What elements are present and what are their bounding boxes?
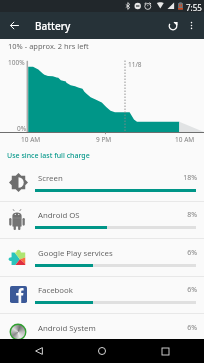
staticText: 8% [172,210,197,220]
staticText: Google Play services [38,248,113,259]
staticText: Screen [38,173,63,184]
staticText: Facebook [38,285,73,296]
button[interactable]: Refresh [164,12,181,39]
button[interactable]: Recents [141,339,189,363]
staticText: 18% [172,173,197,183]
staticText: 7:55 [186,2,202,13]
button[interactable]: Android OS [0,201,204,239]
staticText: 0% [17,124,27,133]
staticText: 10 AM [175,135,195,144]
button[interactable]: More options [181,12,202,39]
staticText: 10% - approx. 2 hrs left [8,41,89,51]
button[interactable]: Back [15,339,63,363]
staticText: 11/8 [128,60,142,69]
button[interactable]: Navigate up [0,12,28,39]
staticText: Use since last full charge [7,151,90,161]
staticText: 10 AM [21,135,41,144]
staticText: 100% [8,58,25,67]
button[interactable]: Home [78,339,126,363]
staticText: Android OS [38,210,80,221]
staticText: 9 PM [96,135,112,144]
staticText: 6% [172,323,197,333]
staticText: 6% [172,248,197,258]
button[interactable]: Android System [0,314,204,352]
button[interactable]: Facebook [0,276,204,314]
button[interactable]: Google Play services [0,239,204,277]
staticText: 6% [172,285,197,295]
staticText: Android System [38,323,96,334]
staticText: Battery [35,19,71,33]
button[interactable]: Screen [0,164,204,202]
